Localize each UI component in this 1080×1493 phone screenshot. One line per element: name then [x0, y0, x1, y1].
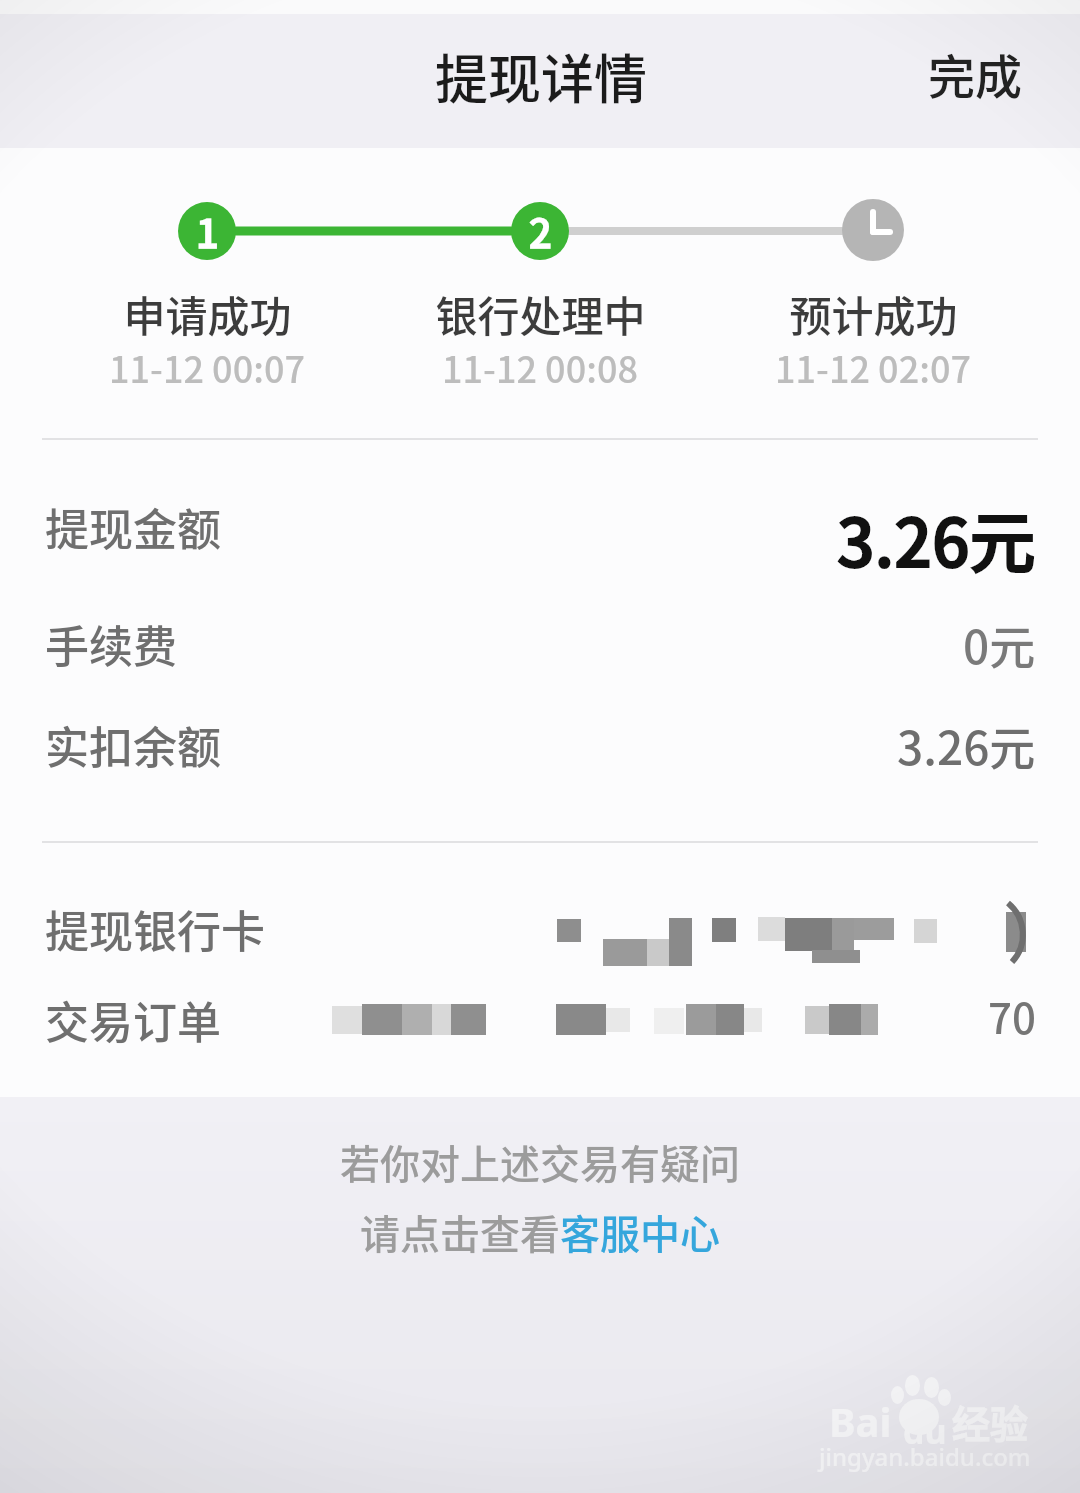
staticText: 实扣余额 — [45, 713, 221, 777]
staticText: 11-12 00:07 — [109, 341, 305, 393]
staticText: 提现银行卡 — [45, 897, 265, 961]
staticText: 手续费 — [45, 612, 177, 676]
staticText: 若你对上述交易有疑问 — [340, 1133, 740, 1191]
staticText: du — [903, 1408, 947, 1450]
staticText: 3.26元 — [837, 490, 1036, 580]
staticText: 交易订单 — [45, 988, 221, 1052]
staticText: 0元 — [963, 611, 1036, 678]
staticText: 11-12 02:07 — [775, 341, 971, 393]
staticText: 提现详情 — [435, 38, 647, 114]
button[interactable]: 完成 — [890, 37, 1060, 109]
staticText: 完成 — [928, 39, 1022, 107]
button[interactable]: 请点击查看客服中心 — [190, 1200, 890, 1264]
staticText: 提现金额 — [45, 495, 221, 559]
staticText: 预计成功 — [789, 283, 958, 343]
staticText: 银行处理中 — [435, 283, 646, 343]
staticText: 70 — [988, 985, 1036, 1046]
staticText: 3.26元 — [897, 712, 1036, 779]
staticText: jingyan.baidu.com — [819, 1440, 1031, 1473]
staticText: 2 — [529, 202, 552, 260]
staticText: 请点击查看客服中心 — [360, 1203, 720, 1261]
staticText: 11-12 00:08 — [442, 341, 638, 393]
staticText: 1 — [196, 202, 219, 260]
staticText: 经验 — [952, 1394, 1029, 1448]
staticText: 申请成功 — [123, 283, 292, 343]
staticText: Bai — [829, 1394, 892, 1448]
